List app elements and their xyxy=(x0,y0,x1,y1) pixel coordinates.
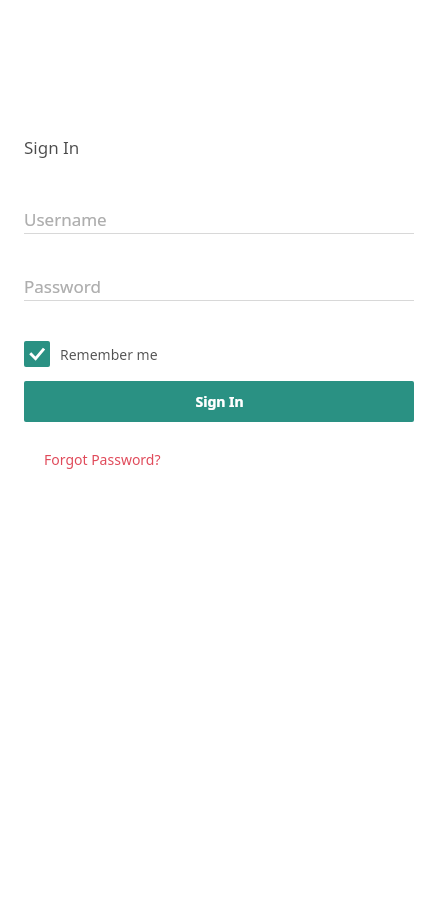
button[interactable]: Sign In xyxy=(24,381,414,422)
staticText: Remember me xyxy=(60,345,158,364)
button[interactable]: Username xyxy=(24,205,414,233)
staticText: Forgot Password? xyxy=(44,450,161,469)
staticText: Password xyxy=(24,275,101,298)
button[interactable]: Password xyxy=(24,272,414,300)
staticText: Sign In xyxy=(195,392,244,411)
staticText: Sign In xyxy=(24,136,80,159)
button[interactable]: Remember me xyxy=(24,341,158,367)
button[interactable]: Forgot Password? xyxy=(44,448,161,471)
staticText: Username xyxy=(24,208,107,231)
